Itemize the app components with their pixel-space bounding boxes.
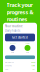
staticText: 3 of 5 xyxy=(26,51,29,53)
staticText: 10 min xyxy=(31,65,35,67)
staticText: Get started xyxy=(12,36,28,39)
staticText: Your routine xyxy=(5,24,23,28)
staticText: Water xyxy=(5,68,9,70)
staticText: Daily habits xyxy=(5,29,20,32)
staticText: 2.4 km xyxy=(31,61,35,63)
staticText: Nutrition xyxy=(25,43,30,44)
staticText: Track your progress & routines xyxy=(6,1,33,23)
staticText: Stretching xyxy=(5,65,12,67)
staticText: Morning run xyxy=(5,61,14,63)
staticText: Workout xyxy=(9,43,15,44)
button[interactable]: Get started xyxy=(5,34,35,41)
staticText: 3 of 5 xyxy=(11,51,14,53)
staticText: 1.5 L xyxy=(32,68,35,70)
